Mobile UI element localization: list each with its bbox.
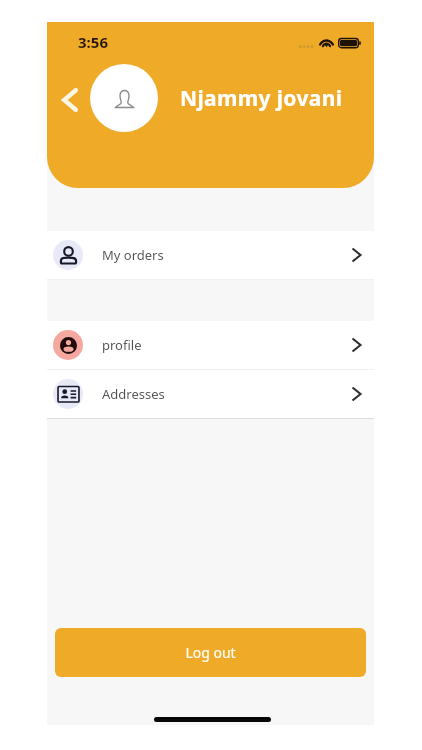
- button[interactable]: profile: [47, 321, 374, 369]
- staticText: 3:56: [78, 32, 108, 52]
- staticText: Addresses: [102, 385, 165, 403]
- staticText: My orders: [102, 246, 164, 264]
- staticText: profile: [102, 336, 142, 354]
- button[interactable]: My orders: [47, 231, 374, 279]
- staticText: Njammy jovani: [180, 84, 343, 113]
- staticText: Log out: [185, 643, 236, 662]
- button[interactable]: Addresses: [47, 370, 374, 418]
- button[interactable]: Back: [55, 85, 85, 115]
- button[interactable]: Log out: [55, 628, 366, 677]
